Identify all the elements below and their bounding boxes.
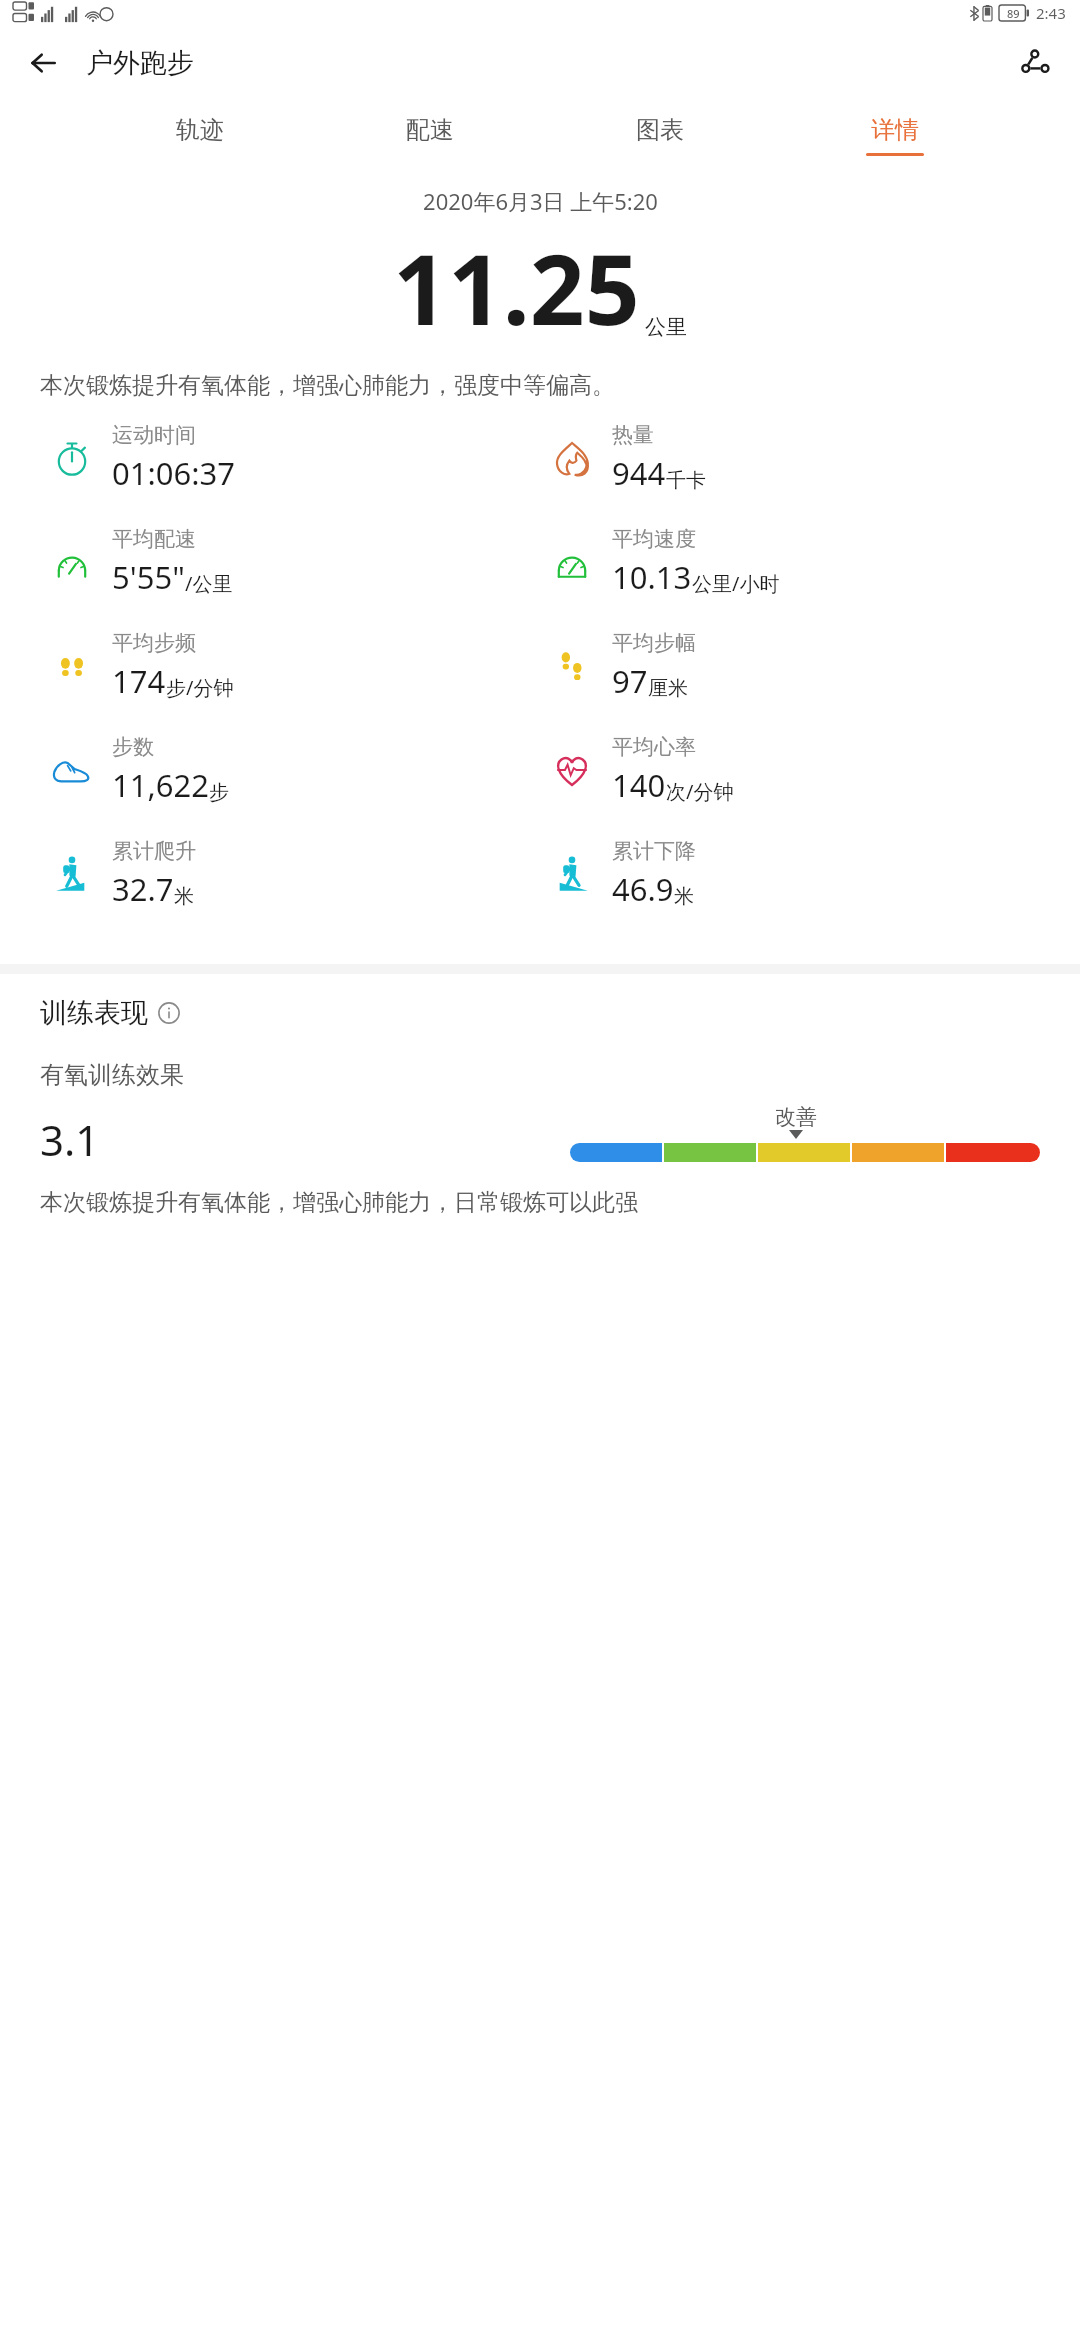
staticText: 46.9 bbox=[612, 868, 674, 910]
button[interactable]: 平均步幅 bbox=[546, 630, 1080, 702]
button[interactable]: 累计下降 bbox=[546, 838, 1080, 910]
staticText: 详情 bbox=[871, 115, 919, 145]
staticText: 步/分钟 bbox=[166, 674, 234, 701]
staticText: 千卡 bbox=[666, 468, 706, 493]
staticText: 97 bbox=[612, 660, 648, 702]
staticText: 改善 bbox=[775, 1104, 817, 1130]
staticText: 5'55" bbox=[112, 556, 185, 598]
staticText: 米 bbox=[674, 884, 694, 909]
staticText: 户外跑步 bbox=[86, 46, 194, 80]
staticText: 平均步幅 bbox=[612, 630, 696, 656]
staticText: /公里 bbox=[185, 570, 233, 597]
button[interactable]: 平均配速 bbox=[46, 526, 540, 598]
staticText: 944 bbox=[612, 452, 666, 494]
button[interactable]: 步数 bbox=[46, 734, 540, 806]
button[interactable]: 详情 bbox=[860, 111, 930, 160]
button[interactable]: 累计爬升 bbox=[46, 838, 540, 910]
staticText: 轨迹 bbox=[176, 115, 224, 145]
staticText: 训练表现 bbox=[40, 996, 148, 1030]
staticText: 平均心率 bbox=[612, 734, 696, 760]
staticText: 11.25 bbox=[393, 222, 640, 353]
staticText: 89 bbox=[1007, 6, 1020, 21]
staticText: 10.13 bbox=[612, 556, 692, 598]
staticText: 米 bbox=[174, 884, 194, 909]
staticText: 平均步频 bbox=[112, 630, 196, 656]
staticText: 运动时间 bbox=[112, 422, 196, 448]
staticText: 热量 bbox=[612, 422, 654, 448]
staticText: 11,622 bbox=[112, 764, 209, 806]
staticText: 2020年6月3日 上午5:20 bbox=[423, 186, 658, 216]
staticText: 32.7 bbox=[112, 868, 174, 910]
staticText: 平均速度 bbox=[612, 526, 696, 552]
staticText: 次/分钟 bbox=[666, 778, 734, 805]
staticText: 步 bbox=[209, 780, 229, 805]
staticText: 厘米 bbox=[648, 676, 688, 701]
button[interactable]: Back bbox=[20, 40, 66, 86]
staticText: 3.1 bbox=[40, 1111, 100, 1168]
staticText: 174 bbox=[112, 660, 166, 702]
staticText: 图表 bbox=[636, 115, 684, 145]
staticText: 01:06:37 bbox=[112, 452, 236, 494]
button[interactable]: 训练表现 bbox=[40, 996, 180, 1030]
staticText: 步数 bbox=[112, 734, 154, 760]
staticText: 平均配速 bbox=[112, 526, 196, 552]
button[interactable]: 运动时间 bbox=[46, 422, 540, 494]
staticText: 累计下降 bbox=[612, 838, 696, 864]
button[interactable]: 轨迹 bbox=[170, 111, 230, 160]
button[interactable]: 平均心率 bbox=[546, 734, 1080, 806]
button[interactable]: Share bbox=[1012, 39, 1060, 87]
staticText: 累计爬升 bbox=[112, 838, 196, 864]
staticText: 本次锻炼提升有氧体能，增强心肺能力，日常锻炼可以此强 bbox=[40, 1188, 1040, 1217]
staticText: 有氧训练效果 bbox=[40, 1060, 184, 1090]
button[interactable]: 热量 bbox=[546, 422, 1080, 494]
staticText: 配速 bbox=[406, 115, 454, 145]
staticText: 公里/小时 bbox=[692, 570, 780, 597]
button[interactable]: 平均速度 bbox=[546, 526, 1080, 598]
staticText: 本次锻炼提升有氧体能，增强心肺能力，强度中等偏高。 bbox=[40, 371, 1040, 400]
staticText: 140 bbox=[612, 764, 666, 806]
button[interactable]: 图表 bbox=[630, 111, 690, 160]
staticText: 公里 bbox=[645, 314, 687, 340]
button[interactable]: 平均步频 bbox=[46, 630, 540, 702]
staticText: 2:43 bbox=[1036, 3, 1066, 23]
button[interactable]: 配速 bbox=[400, 111, 460, 160]
